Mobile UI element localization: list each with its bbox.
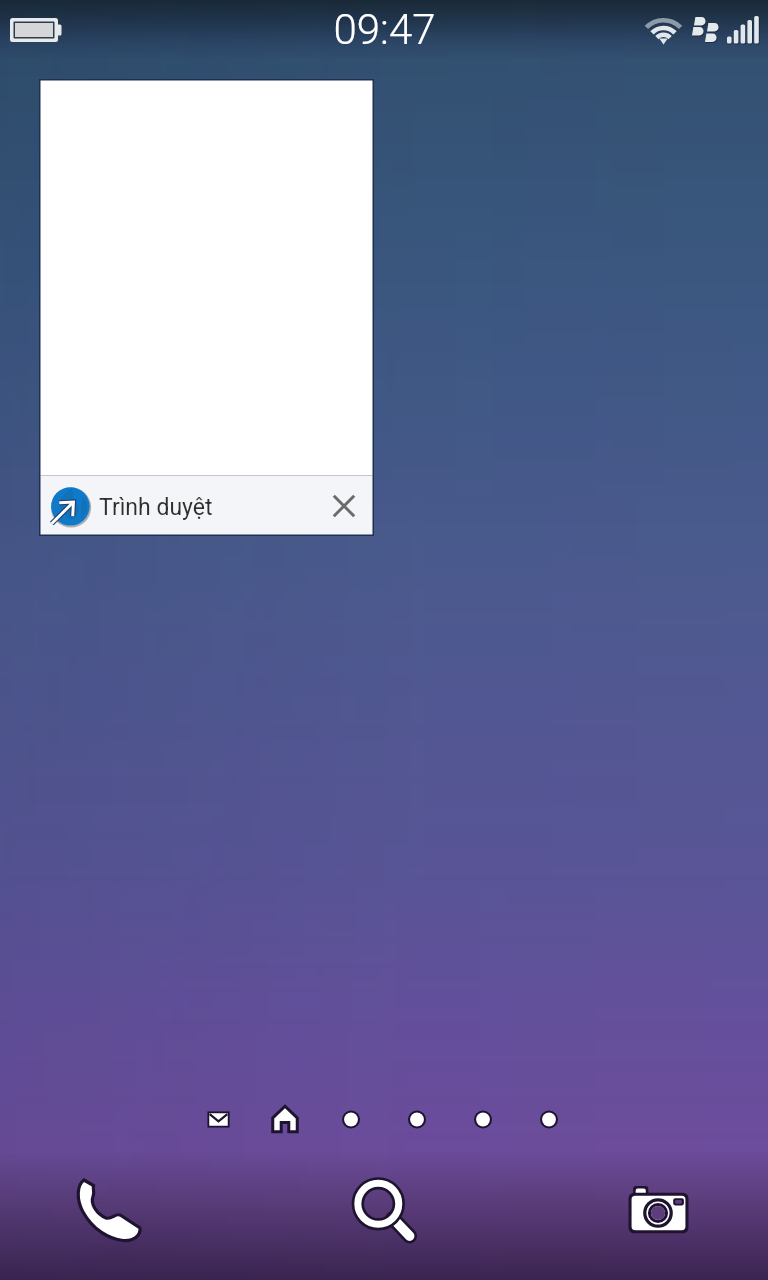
button[interactable]: Home page (263, 1097, 308, 1142)
staticText: Trình duyệt (99, 494, 213, 521)
button[interactable]: Phone (70, 1170, 150, 1250)
button[interactable]: Camera (618, 1170, 698, 1250)
staticText: 09:47 (333, 5, 436, 54)
button[interactable]: Close Trình duyệt (319, 482, 367, 530)
button[interactable]: Page 5 (461, 1097, 506, 1142)
button[interactable]: Messages page (196, 1097, 241, 1142)
button[interactable]: Page 3 (329, 1097, 374, 1142)
button[interactable]: Page 6 (527, 1097, 572, 1142)
button[interactable]: Trình duyệt (39, 79, 374, 536)
button[interactable]: Search (344, 1170, 424, 1250)
button[interactable]: Page 4 (395, 1097, 440, 1142)
